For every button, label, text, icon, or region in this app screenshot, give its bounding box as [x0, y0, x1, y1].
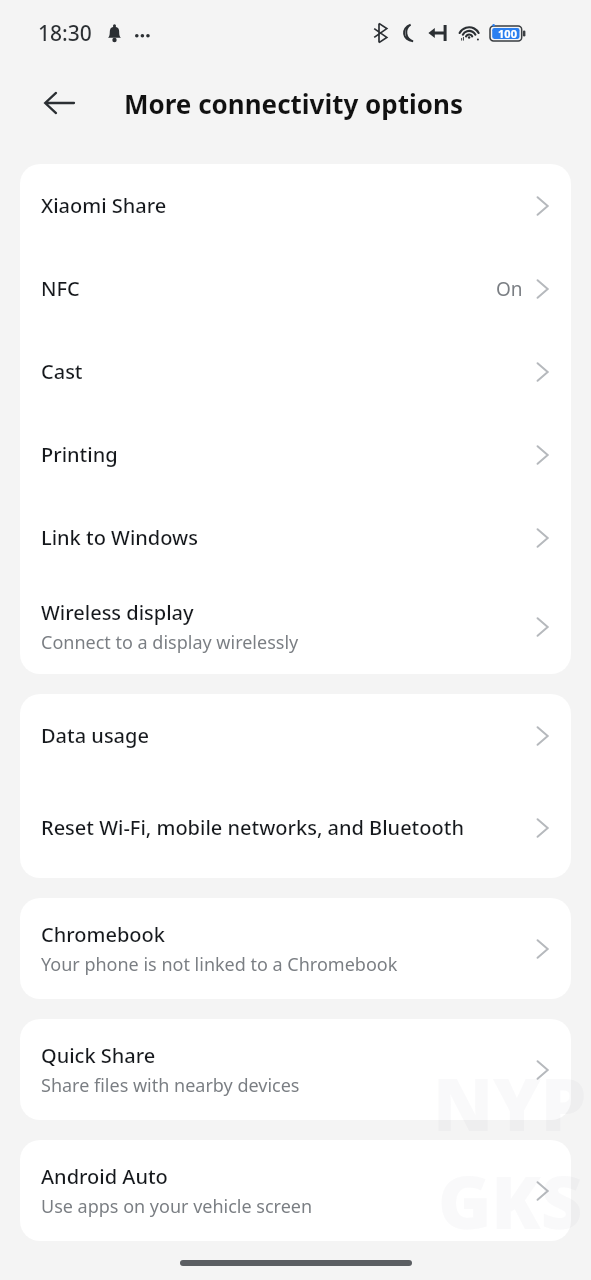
staticText: More connectivity options [124, 86, 464, 121]
staticText: Your phone is not linked to a Chromebook [41, 952, 398, 977]
button[interactable]: Android Auto [20, 1140, 571, 1241]
staticText: NYP [433, 1054, 587, 1152]
staticText: Wireless display [41, 599, 194, 626]
button[interactable]: Xiaomi Share [20, 164, 571, 247]
staticText: NFC [41, 275, 80, 302]
staticText: Share files with nearby devices [41, 1073, 300, 1098]
staticText: 100 [498, 26, 517, 41]
staticText: Xiaomi Share [41, 192, 167, 219]
staticText: On [496, 276, 523, 302]
staticText: Data usage [41, 722, 149, 749]
button[interactable]: NFC [20, 247, 571, 330]
button[interactable]: Quick Share [20, 1019, 571, 1120]
staticText: Reset Wi-Fi, mobile networks, and Blueto… [41, 814, 464, 841]
staticText: Chromebook [41, 921, 165, 948]
staticText: Quick Share [41, 1042, 156, 1069]
button[interactable]: Printing [20, 413, 571, 496]
staticText: Use apps on your vehicle screen [41, 1194, 313, 1219]
staticText: 18:30 [38, 19, 92, 48]
button[interactable]: Link to Windows [20, 496, 571, 579]
button[interactable]: Data usage [20, 694, 571, 777]
button[interactable]: Chromebook [20, 898, 571, 999]
staticText: Cast [41, 358, 83, 385]
button[interactable]: Back [30, 74, 88, 132]
staticText: Link to Windows [41, 524, 198, 551]
staticText: Android Auto [41, 1163, 168, 1190]
button[interactable]: Cast [20, 330, 571, 413]
staticText: GKS [438, 1152, 583, 1250]
staticText: Connect to a display wirelessly [41, 630, 299, 655]
button[interactable]: Wireless display [20, 579, 571, 674]
button[interactable]: Reset Wi-Fi, mobile networks, and Blueto… [20, 777, 571, 878]
staticText: Printing [41, 441, 118, 468]
